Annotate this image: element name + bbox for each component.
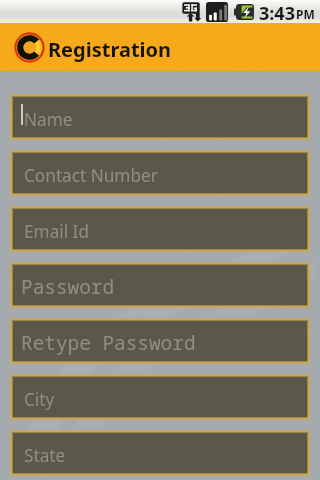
staticText: PM [296,6,315,22]
button[interactable]: Name [11,95,309,139]
other: Battery charging [234,4,254,20]
button[interactable]: City [11,375,309,419]
staticText: 3:43 [259,1,295,24]
staticText: Email Id [24,220,90,243]
staticText: State [24,444,66,467]
other: App logo [14,32,45,63]
button[interactable]: Password [11,263,309,307]
button[interactable]: Contact Number [11,151,309,195]
button[interactable]: Retype Password [11,319,309,363]
staticText: City [24,388,55,411]
button[interactable]: State [11,431,309,475]
staticText: Name [24,108,73,131]
other: 3G data [181,1,202,22]
staticText: Contact Number [24,164,158,187]
staticText: Password [21,273,115,299]
other: Signal strength [206,2,228,22]
button[interactable]: Email Id [11,207,309,251]
staticText: Retype Password [21,329,196,355]
staticText: Registration [48,36,172,63]
